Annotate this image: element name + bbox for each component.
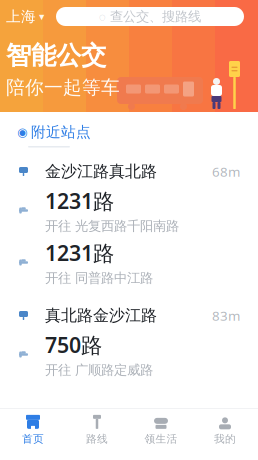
staticText: 开往 光复西路千阳南路 — [45, 218, 179, 234]
staticText: 上海 — [6, 7, 36, 25]
staticText: ◉ — [17, 125, 27, 139]
staticText: 750路 — [45, 331, 102, 359]
staticText: 智能公交 — [6, 40, 106, 71]
staticText: 1231路 — [45, 239, 114, 267]
staticText: 我的 — [214, 432, 236, 445]
staticText: 83m — [212, 307, 240, 324]
button[interactable]: 路线 — [65, 409, 129, 453]
button[interactable]: 1231路 — [0, 184, 258, 236]
button[interactable]: 真北路金沙江路 — [0, 302, 258, 328]
button[interactable]: 领生活 — [129, 409, 193, 453]
staticText: 真北路金沙江路 — [45, 306, 157, 325]
button[interactable]: 1231路 — [0, 236, 258, 288]
staticText: 1231路 — [45, 187, 114, 215]
staticText: 金沙江路真北路 — [45, 162, 157, 181]
button[interactable]: 750路 — [0, 328, 258, 380]
staticText: 查公交、搜路线 — [110, 8, 201, 25]
button[interactable]: 我的 — [193, 409, 257, 453]
staticText: 路线 — [86, 432, 108, 445]
staticText: 陪你一起等车 — [6, 76, 120, 99]
staticText: 开往 同普路中江路 — [45, 270, 153, 286]
staticText: 68m — [212, 163, 240, 180]
staticText: 开往 广顺路定威路 — [45, 362, 153, 378]
staticText: ◌ — [99, 8, 106, 24]
staticText: ▾ — [39, 10, 44, 22]
button[interactable]: 金沙江路真北路 — [0, 158, 258, 184]
button[interactable]: 上海 — [6, 7, 44, 25]
button[interactable]: 首页 — [1, 409, 65, 453]
staticText: 附近站点 — [31, 123, 91, 141]
staticText: 首页 — [22, 432, 44, 445]
button[interactable]: ◌ — [56, 7, 244, 26]
staticText: 领生活 — [144, 432, 177, 445]
